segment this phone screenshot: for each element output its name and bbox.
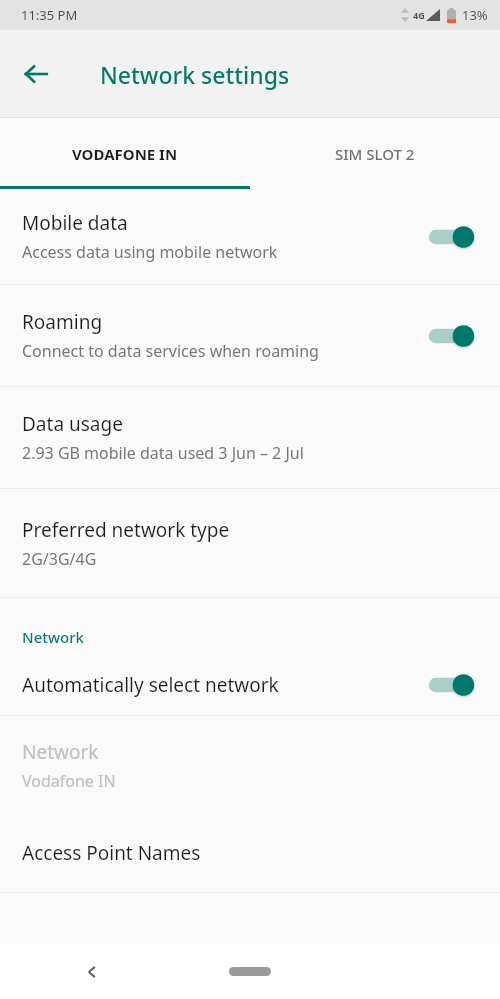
button[interactable]: Data usage — [0, 387, 500, 488]
staticText: Mobile data — [22, 210, 128, 236]
staticText: Connect to data services when roaming — [22, 340, 319, 362]
staticText: Roaming — [22, 309, 103, 335]
button[interactable]: Network — [0, 716, 500, 814]
staticText: Access data using mobile network — [22, 241, 278, 263]
staticText: Network settings — [100, 59, 290, 90]
staticText: 13% — [462, 6, 488, 24]
button[interactable]: Roaming — [0, 285, 500, 386]
button[interactable]: Back — [10, 48, 62, 100]
staticText: SIM SLOT 2 — [335, 144, 415, 164]
staticText: Automatically select network — [22, 672, 422, 698]
button[interactable]: VODAFONE IN — [0, 118, 250, 189]
staticText: 4G — [413, 9, 425, 21]
button[interactable]: Preferred network type — [0, 489, 500, 597]
staticText: Network — [22, 739, 99, 765]
staticText: Preferred network type — [22, 517, 230, 543]
staticText: VODAFONE IN — [72, 144, 178, 164]
button[interactable]: Back — [70, 950, 114, 994]
button[interactable]: Mobile data — [0, 189, 500, 284]
button[interactable]: Access Point Names — [0, 814, 500, 892]
staticText: Access Point Names — [22, 840, 201, 866]
button[interactable]: Automatically select network — [0, 655, 500, 715]
staticText: Vodafone IN — [22, 770, 116, 792]
staticText: 2.93 GB mobile data used 3 Jun – 2 Jul — [22, 442, 304, 464]
button[interactable]: Home — [229, 967, 271, 976]
staticText: Data usage — [22, 411, 123, 437]
staticText: 11:35 PM — [21, 6, 78, 24]
button[interactable]: SIM SLOT 2 — [250, 118, 500, 189]
staticText: Network — [22, 627, 84, 647]
staticText: 2G/3G/4G — [22, 548, 97, 570]
